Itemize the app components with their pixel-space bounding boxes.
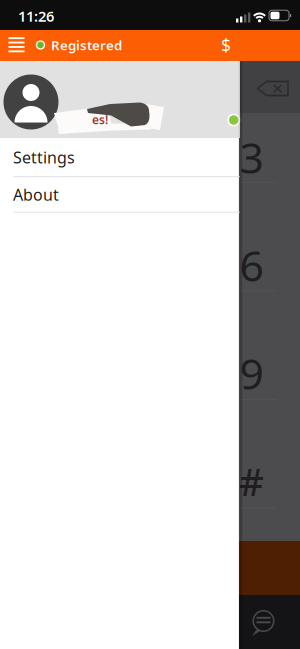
button[interactable]: About [0, 177, 240, 212]
staticText: es! [92, 111, 108, 127]
staticText: Registered [51, 36, 122, 54]
button[interactable]: $ [211, 29, 241, 60]
button[interactable]: Settings [0, 138, 240, 176]
staticText: 3 [239, 129, 263, 185]
staticText: About [13, 184, 59, 205]
staticText: # [239, 455, 264, 507]
staticText: Settings [13, 147, 75, 168]
staticText: $ [221, 33, 231, 56]
staticText: 6 [239, 237, 263, 293]
staticText: 9 [239, 345, 263, 401]
staticText: 11:26 [18, 6, 54, 26]
button[interactable] [0, 0, 300, 649]
